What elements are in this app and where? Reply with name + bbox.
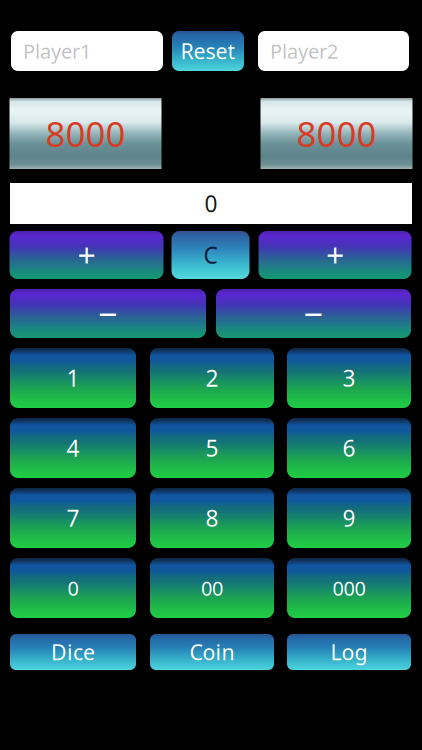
button[interactable]: Coin	[150, 634, 274, 670]
button[interactable]: 7	[10, 488, 136, 548]
button[interactable]: Dice	[10, 634, 136, 670]
button[interactable]: 3	[287, 348, 411, 408]
staticText: C	[203, 240, 217, 270]
button[interactable]: 8000	[260, 98, 412, 169]
staticText: −	[303, 290, 323, 336]
button[interactable]: 6	[287, 418, 411, 478]
staticText: 0	[204, 188, 217, 218]
staticText: Reset	[180, 37, 235, 65]
staticText: 8	[205, 503, 218, 533]
button[interactable]: 8000	[9, 98, 161, 169]
staticText: Player1	[23, 38, 91, 64]
button[interactable]: Player2	[258, 31, 409, 71]
button[interactable]: Player1	[11, 31, 163, 71]
staticText: 7	[66, 503, 79, 533]
staticText: −	[98, 290, 118, 336]
staticText: 00	[201, 575, 223, 601]
staticText: Player2	[270, 38, 338, 64]
button[interactable]: 00	[150, 558, 274, 618]
button[interactable]: +	[9, 231, 163, 279]
staticText: 0	[67, 575, 78, 601]
staticText: Coin	[189, 638, 234, 666]
button[interactable]: −	[216, 289, 411, 338]
staticText: 6	[342, 433, 355, 463]
staticText: 3	[342, 363, 355, 393]
button[interactable]: Log	[287, 634, 411, 670]
button[interactable]: 4	[10, 418, 136, 478]
staticText: 9	[342, 503, 355, 533]
button[interactable]: 0	[10, 558, 136, 618]
button[interactable]: 1	[10, 348, 136, 408]
staticText: 8000	[296, 110, 376, 156]
button[interactable]: 8	[150, 488, 274, 548]
staticText: 1	[66, 363, 79, 393]
button[interactable]: 5	[150, 418, 274, 478]
button[interactable]: 000	[287, 558, 411, 618]
staticText: 5	[205, 433, 218, 463]
staticText: Log	[330, 638, 367, 666]
staticText: +	[77, 234, 95, 276]
staticText: 2	[205, 363, 218, 393]
staticText: Dice	[51, 638, 95, 666]
staticText: 8000	[45, 110, 125, 156]
button[interactable]: −	[10, 289, 206, 338]
button[interactable]: Reset	[172, 31, 244, 71]
button[interactable]: 9	[287, 488, 411, 548]
button[interactable]: +	[258, 231, 411, 279]
button[interactable]: C	[171, 231, 249, 279]
staticText: +	[326, 234, 344, 276]
staticText: 000	[332, 575, 365, 601]
staticText: 4	[66, 433, 79, 463]
button[interactable]: 2	[150, 348, 274, 408]
